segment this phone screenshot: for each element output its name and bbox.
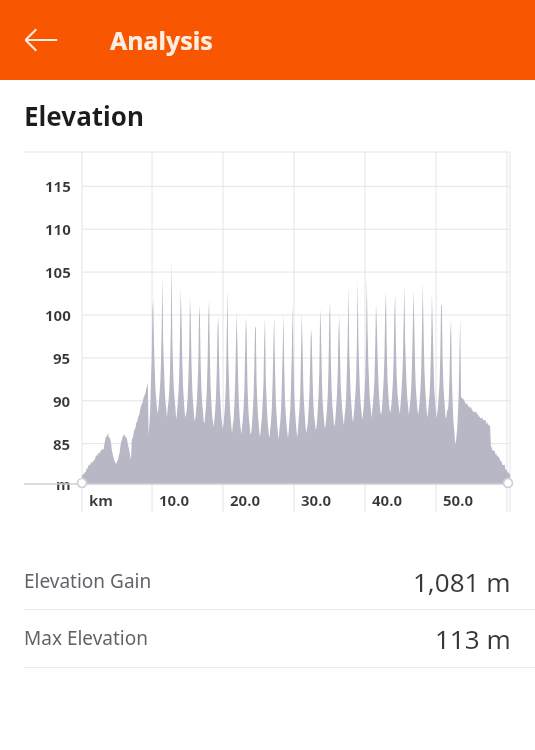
button[interactable]: Max Elevation [0,610,535,666]
staticText: Analysis [110,23,213,57]
button[interactable]: Back [13,12,69,68]
staticText: 1,081 m [413,564,511,599]
staticText: Elevation [24,98,144,133]
staticText: Elevation Gain [24,568,152,594]
staticText: Max Elevation [24,625,148,651]
staticText: 113 m [435,621,511,656]
button[interactable]: Elevation Gain [0,553,535,609]
